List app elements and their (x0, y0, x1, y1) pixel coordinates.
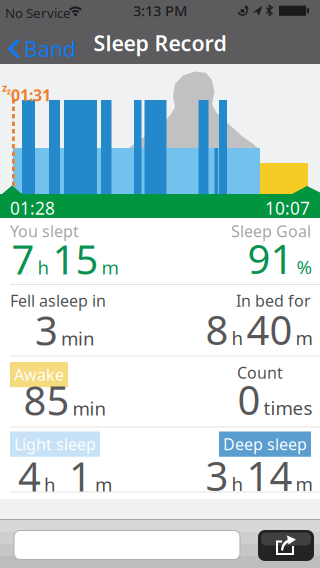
staticText: 3 (35, 303, 58, 356)
staticText: min (61, 326, 95, 351)
staticText: h (37, 255, 49, 280)
staticText: % (296, 254, 312, 279)
staticText: Fell asleep in (10, 290, 106, 311)
staticText: 85 (23, 373, 69, 426)
staticText: z (7, 86, 11, 97)
staticText: Band (24, 34, 76, 63)
staticText: min (72, 396, 106, 421)
staticText: m (101, 255, 118, 280)
button[interactable]: Back (8, 31, 76, 66)
staticText: m (295, 471, 312, 496)
staticText: h (231, 471, 243, 496)
staticText: 0 (237, 373, 260, 426)
staticText: 7 (11, 232, 34, 285)
staticText: h (231, 325, 243, 350)
staticText: 01:28 (10, 196, 55, 219)
staticText: Sleep Goal (231, 220, 311, 242)
button[interactable]: Add comment (14, 530, 240, 559)
staticText: 01:31 (11, 84, 51, 106)
staticText: m (295, 325, 312, 350)
staticText: 10:07 (265, 196, 310, 219)
staticText: m (95, 472, 112, 497)
staticText: In bed for (236, 290, 311, 311)
staticText: Deep sleep (223, 433, 307, 455)
staticText: 40 (246, 303, 292, 356)
staticText: 91 (247, 232, 293, 285)
staticText: 14 (246, 449, 292, 502)
staticText: 3:13 PM (133, 1, 187, 20)
staticText: h (44, 472, 56, 497)
staticText: 15 (52, 232, 98, 285)
staticText: 4 (18, 449, 41, 502)
staticText: 3 (205, 449, 228, 502)
button[interactable]: Share (258, 530, 314, 561)
staticText: Light sleep (14, 433, 96, 455)
staticText: times (263, 395, 312, 420)
staticText: z (2, 80, 7, 95)
staticText: Count (237, 362, 283, 383)
staticText: Awake (14, 364, 64, 385)
staticText: You slept (10, 220, 79, 242)
staticText: 1 (59, 449, 92, 502)
staticText: Sleep Record (93, 29, 226, 57)
staticText: No Service (5, 4, 71, 22)
staticText: 8 (205, 303, 228, 356)
